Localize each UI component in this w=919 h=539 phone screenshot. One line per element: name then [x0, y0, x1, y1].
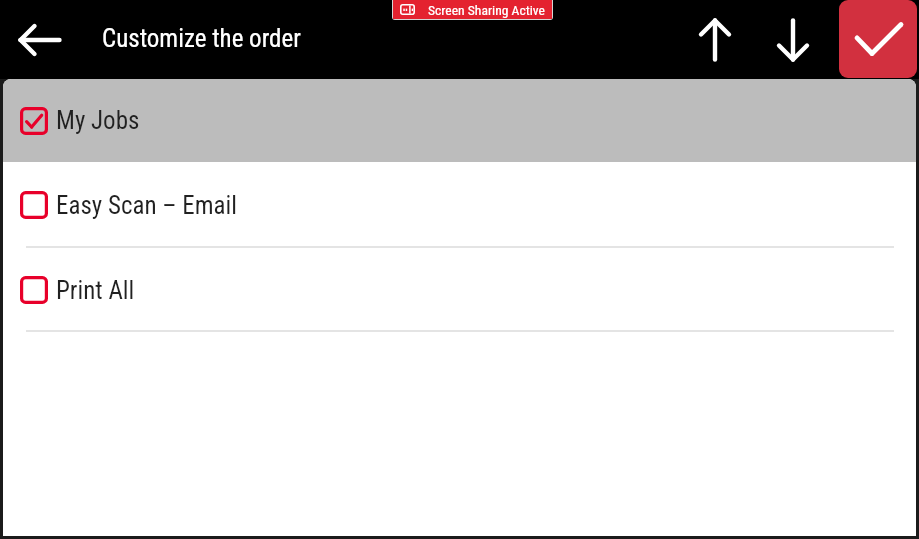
staticText: Customize the order — [102, 24, 301, 53]
button[interactable]: Move down — [763, 10, 823, 70]
staticText: My Jobs — [56, 106, 140, 135]
button[interactable]: Print All — [3, 248, 916, 332]
button[interactable]: Easy Scan – Email — [3, 162, 916, 248]
staticText: Easy Scan – Email — [56, 191, 238, 220]
button[interactable]: My Jobs — [3, 79, 916, 162]
button[interactable]: Back — [10, 10, 70, 70]
staticText: Print All — [56, 276, 135, 305]
button[interactable]: Screen Sharing Active — [392, 0, 553, 20]
button[interactable]: Confirm — [839, 0, 917, 78]
button[interactable]: Move up — [685, 10, 745, 70]
staticText: Screen Sharing Active — [428, 2, 545, 18]
